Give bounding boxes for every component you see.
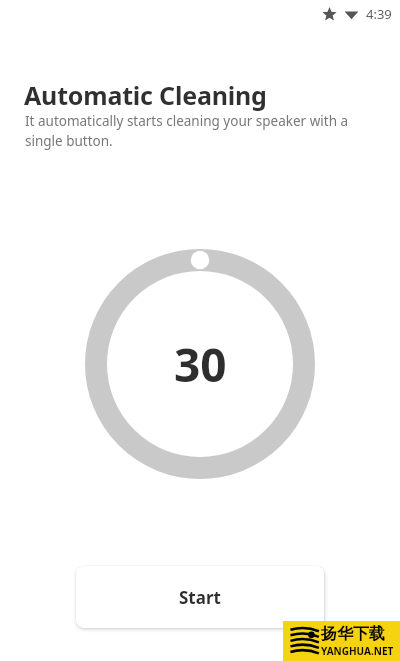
staticText: 4:39 bbox=[366, 5, 392, 23]
button[interactable]: Start bbox=[76, 566, 324, 628]
staticText: 30 bbox=[174, 333, 227, 396]
staticText: Automatic Cleaning bbox=[24, 78, 267, 112]
button[interactable]: Cleaning duration dial, 30 seconds bbox=[85, 249, 315, 479]
staticText: Start bbox=[179, 586, 221, 609]
staticText: It automatically starts cleaning your sp… bbox=[25, 112, 365, 150]
staticText: YANGHUA.NET bbox=[321, 644, 394, 658]
staticText: 扬华下载 bbox=[321, 624, 385, 644]
